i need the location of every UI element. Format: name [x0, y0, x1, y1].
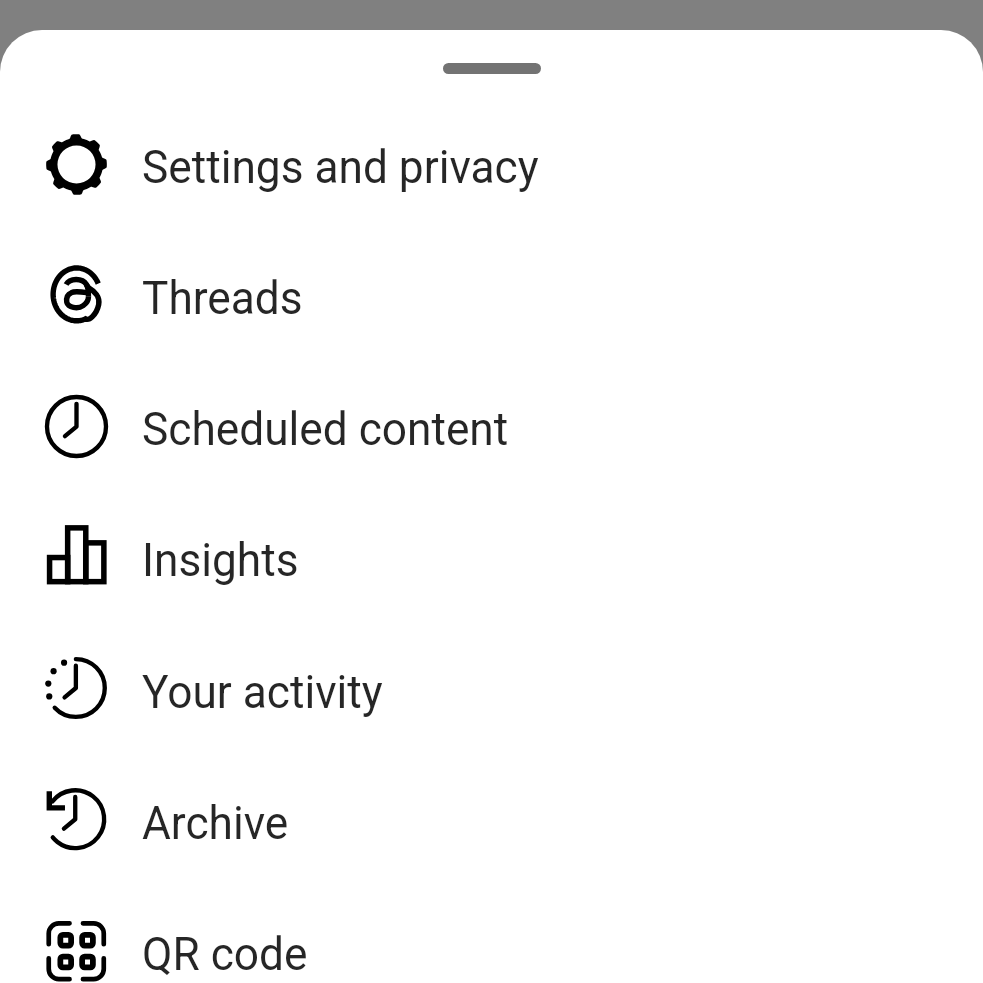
button[interactable]: Insights [0, 492, 983, 623]
other: Drag handle [443, 63, 541, 74]
staticText: Threads [142, 271, 303, 326]
button[interactable]: Threads [0, 230, 983, 361]
button[interactable]: Settings and privacy [0, 99, 983, 230]
button[interactable]: Your activity [0, 624, 983, 755]
staticText: Insights [142, 533, 299, 588]
staticText: Archive [142, 796, 288, 851]
staticText: Your activity [142, 665, 383, 720]
staticText: QR code [142, 927, 308, 982]
staticText: Scheduled content [142, 402, 509, 457]
button[interactable]: Archive [0, 755, 983, 886]
button[interactable]: QR code [0, 886, 983, 983]
staticText: Settings and privacy [142, 140, 539, 195]
button[interactable]: Scheduled content [0, 361, 983, 492]
